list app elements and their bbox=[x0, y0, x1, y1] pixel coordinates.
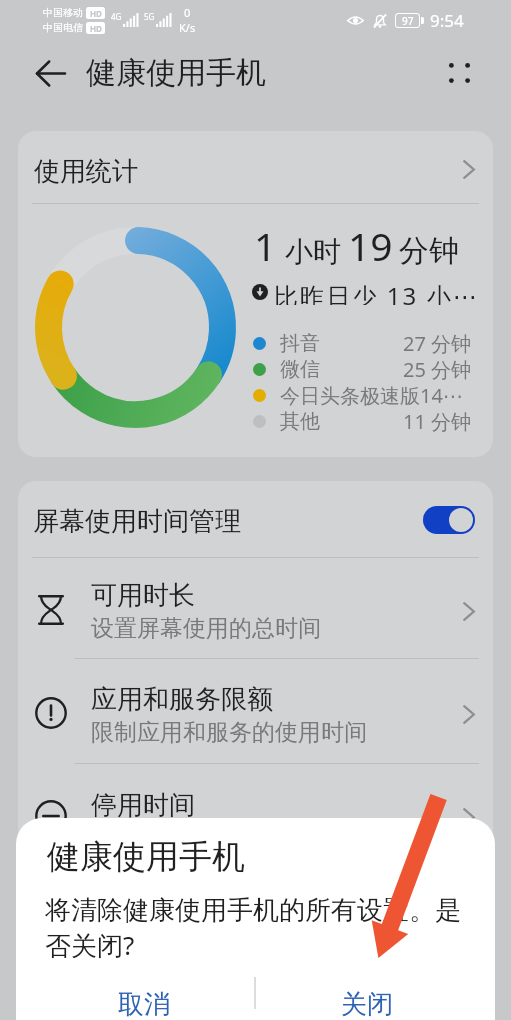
staticText: 抖音 bbox=[280, 331, 320, 356]
staticText: 关闭 bbox=[341, 988, 393, 1020]
staticText: 健康使用手机 bbox=[47, 836, 245, 878]
staticText: 中国电信 bbox=[43, 21, 83, 34]
staticText: 屏幕使用时间管理 bbox=[33, 505, 241, 538]
staticText: 设置屏幕使用的总时间 bbox=[91, 614, 321, 643]
staticText: 97 bbox=[402, 14, 414, 27]
staticText: 今日头条极速版14⋯ bbox=[280, 382, 463, 408]
staticText: 健康使用手机 bbox=[86, 54, 266, 92]
staticText: 25 分钟 bbox=[403, 356, 472, 382]
staticText: HD bbox=[90, 8, 102, 19]
staticText: 19 bbox=[348, 219, 393, 272]
staticText: 其他 bbox=[280, 409, 320, 434]
staticText: 1 bbox=[254, 219, 277, 272]
staticText: 取消 bbox=[118, 988, 170, 1020]
staticText: 9:54 bbox=[430, 9, 464, 32]
button[interactable]: 可用时长 bbox=[18, 558, 493, 658]
staticText: 将清除健康使用手机的所有设置。是 否关闭? bbox=[45, 894, 461, 962]
staticText: 微信 bbox=[280, 357, 320, 382]
staticText: 小时 bbox=[285, 234, 341, 269]
staticText: 比昨日少 13 小⋯ bbox=[274, 279, 479, 305]
staticText: 11 分钟 bbox=[403, 408, 472, 434]
staticText: 使用统计 bbox=[34, 155, 138, 188]
staticText: 27 分钟 bbox=[403, 330, 472, 356]
button[interactable]: 取消 bbox=[16, 966, 254, 1020]
button[interactable]: 屏幕使用时间管理 bbox=[18, 481, 493, 557]
staticText: 4G bbox=[111, 11, 122, 22]
staticText: 0 bbox=[184, 5, 191, 20]
staticText: 停用时间 bbox=[91, 789, 195, 822]
button[interactable]: 使用统计 bbox=[18, 131, 493, 203]
staticText: 5G bbox=[144, 11, 155, 22]
button[interactable]: 更多选项 bbox=[437, 51, 481, 95]
staticText: 分钟 bbox=[399, 232, 459, 270]
button[interactable]: 屏幕使用时间管理开关 bbox=[423, 506, 475, 534]
staticText: HD bbox=[90, 23, 102, 34]
staticText: 应用和服务限额 bbox=[91, 683, 273, 716]
staticText: 可用时长 bbox=[91, 579, 195, 612]
button[interactable]: 停用时间 bbox=[18, 764, 493, 864]
staticText: 中国移动 bbox=[43, 6, 83, 19]
staticText: K/s bbox=[179, 20, 196, 35]
button[interactable]: 返回 bbox=[29, 51, 73, 95]
button[interactable]: 关闭 bbox=[256, 966, 495, 1020]
staticText: 限制应用和服务的使用时间 bbox=[91, 718, 367, 747]
button[interactable]: 应用和服务限额 bbox=[18, 659, 493, 763]
